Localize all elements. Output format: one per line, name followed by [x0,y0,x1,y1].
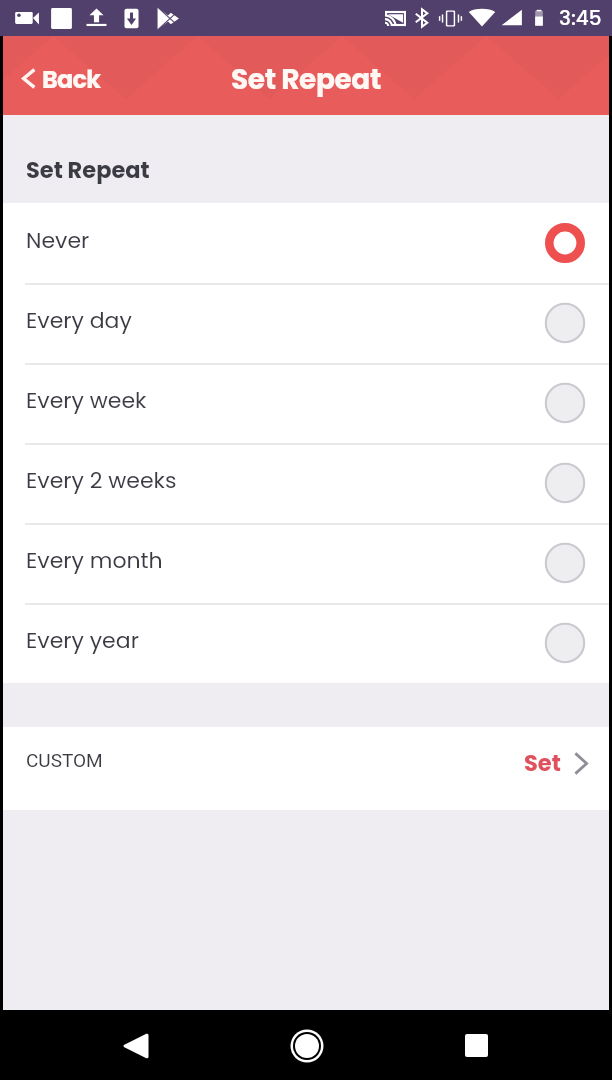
staticText: Back [42,63,101,97]
button[interactable]: Recent apps [452,1021,501,1070]
staticText: Every year [26,625,139,656]
staticText: Never [26,225,90,256]
button[interactable]: Home [282,1021,331,1070]
button[interactable]: Every month [3,523,609,603]
staticText: Every day [26,305,132,336]
staticText: Every month [26,545,163,576]
staticText: 3:45 [559,4,602,32]
staticText: Set Repeat [231,60,381,99]
staticText: Every week [26,385,147,416]
button[interactable]: Every week [3,363,609,443]
button[interactable]: Every 2 weeks [3,443,609,523]
button[interactable]: Never [3,203,609,283]
staticText: Every 2 weeks [26,465,177,496]
button[interactable]: CUSTOM [3,727,609,810]
button[interactable]: Every year [3,603,609,683]
button[interactable]: Back [3,45,117,107]
button[interactable]: Back [111,1021,160,1070]
staticText: CUSTOM [26,749,103,771]
button[interactable]: Every day [3,283,609,363]
staticText: Set [524,747,561,778]
staticText: Set Repeat [26,154,150,185]
